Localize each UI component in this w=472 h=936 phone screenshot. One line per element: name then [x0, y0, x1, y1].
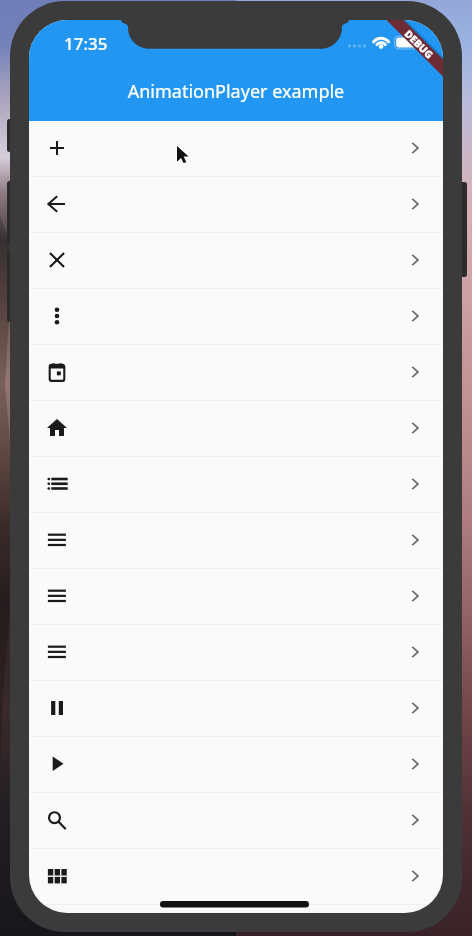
button[interactable]: search: [29, 793, 443, 849]
button[interactable]: menu: [29, 513, 443, 569]
staticText: DEBUG: [401, 26, 437, 62]
button[interactable]: add: [29, 121, 443, 177]
button[interactable]: menu: [29, 569, 443, 625]
button[interactable]: calendar: [29, 345, 443, 401]
button[interactable]: close: [29, 233, 443, 289]
staticText: AnimationPlayer example: [29, 79, 443, 104]
button[interactable]: menu: [29, 625, 443, 681]
button[interactable]: pause: [29, 681, 443, 737]
button[interactable]: play: [29, 737, 443, 793]
button[interactable]: home: [29, 401, 443, 457]
button[interactable]: list: [29, 457, 443, 513]
button[interactable]: more: [29, 289, 443, 345]
staticText: 17:35: [64, 32, 108, 55]
button[interactable]: grid: [29, 849, 443, 905]
button[interactable]: back: [29, 177, 443, 233]
